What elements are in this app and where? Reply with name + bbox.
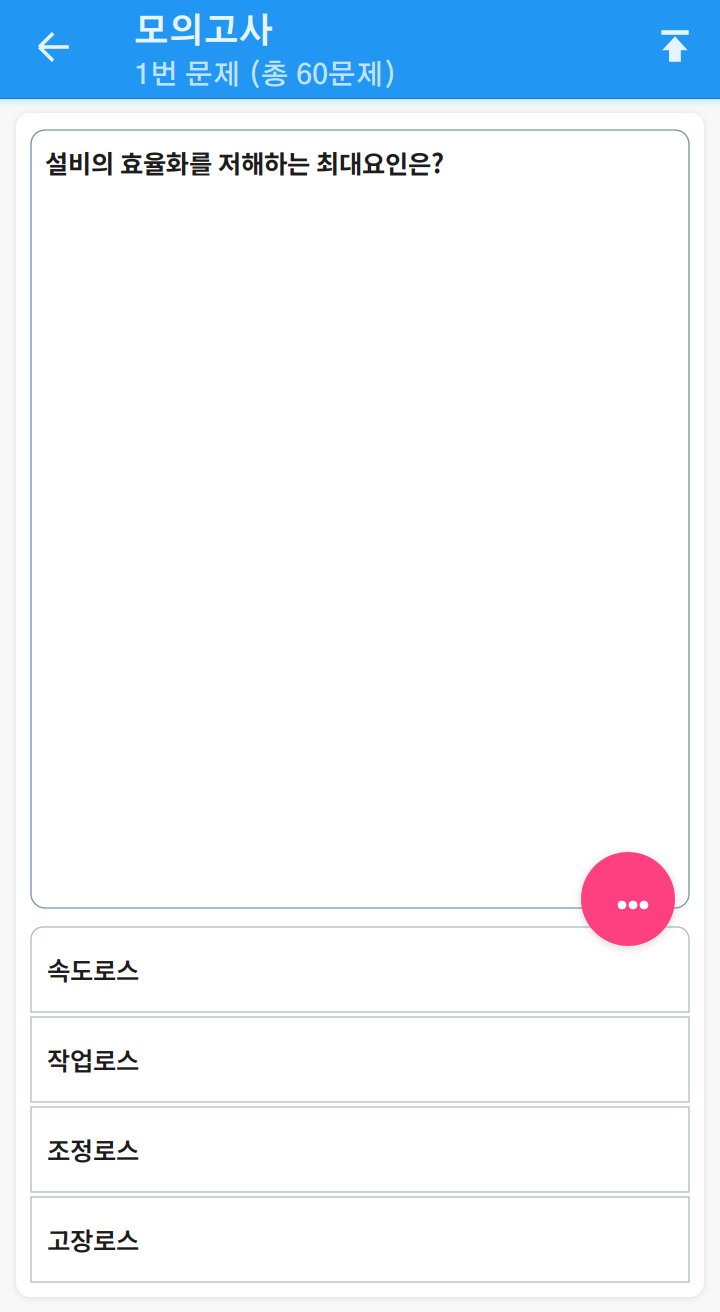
- button[interactable]: More options: [581, 852, 675, 946]
- button[interactable]: Back: [8, 0, 100, 96]
- staticText: 조정로스: [47, 1131, 139, 1168]
- staticText: 설비의 효율화를 저해하는 최대요인은?: [45, 144, 444, 181]
- staticText: 속도로스: [47, 951, 139, 988]
- staticText: 작업로스: [47, 1041, 139, 1078]
- button[interactable]: 속도로스: [31, 927, 689, 1012]
- staticText: 고장로스: [47, 1221, 139, 1258]
- button[interactable]: 고장로스: [31, 1197, 689, 1282]
- staticText: 모의고사: [134, 15, 274, 50]
- staticText: 1번 문제 (총 60문제): [134, 62, 397, 90]
- button[interactable]: Submit answers: [639, 0, 711, 95]
- button[interactable]: 조정로스: [31, 1107, 689, 1192]
- button[interactable]: 작업로스: [31, 1017, 689, 1102]
